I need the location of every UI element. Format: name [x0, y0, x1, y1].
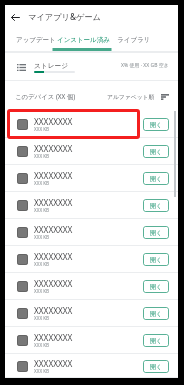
button[interactable]: アップデート [5, 28, 56, 51]
button[interactable]: 開く [143, 334, 169, 347]
staticText: 開く [150, 283, 163, 291]
staticText: ストレージ [34, 62, 69, 70]
staticText: X% 使用 · XX GB 空き [121, 62, 169, 69]
button[interactable]: 開く [143, 360, 169, 373]
staticText: 開く [150, 363, 163, 371]
button[interactable]: XXXXXXXX [5, 273, 178, 300]
button[interactable]: XXXXXXXX [5, 300, 178, 327]
button[interactable]: 開く [143, 172, 169, 185]
button[interactable]: 開く [143, 118, 169, 131]
staticText: XXX KB [34, 342, 50, 348]
staticText: 開く [150, 310, 163, 318]
button[interactable]: 開く [143, 307, 169, 320]
staticText: ライブラリ [117, 36, 151, 44]
staticText: XXX KB [34, 180, 50, 186]
staticText: XXXXXXXX [34, 278, 73, 289]
staticText: XXX KB [34, 126, 50, 132]
button[interactable]: XXXXXXXX [5, 327, 178, 354]
staticText: 開く [150, 121, 163, 129]
staticText: 開く [150, 256, 163, 264]
button[interactable]: ストレージ [5, 53, 178, 81]
staticText: XXX KB [34, 153, 50, 159]
staticText: XXX KB [34, 288, 50, 294]
staticText: XXX KB [34, 234, 50, 240]
button[interactable]: 開く [143, 253, 169, 266]
button[interactable]: アルファベット順 [107, 93, 169, 100]
button[interactable]: XXXXXXXX [5, 192, 178, 219]
staticText: XXXXXXXX [34, 170, 73, 181]
staticText: XXX KB [34, 261, 50, 267]
staticText: 開く [150, 337, 163, 345]
button[interactable]: 開く [143, 226, 169, 239]
button[interactable]: XXXXXXXX [5, 219, 178, 246]
staticText: XXXXXXXX [34, 358, 73, 369]
staticText: XXX KB [34, 207, 50, 213]
button[interactable]: XXXXXXXX [5, 111, 178, 138]
staticText: 開く [150, 175, 163, 183]
staticText: XXXXXXXX [34, 224, 73, 235]
button[interactable]: 開く [143, 199, 169, 212]
button[interactable]: XXXXXXXX [5, 138, 178, 165]
button[interactable]: XXXXXXXX [5, 246, 178, 273]
staticText: XXXXXXXX [34, 332, 73, 343]
button[interactable]: Back [5, 7, 25, 27]
staticText: 開く [150, 148, 163, 156]
button[interactable]: XXXXXXXX [5, 354, 178, 378]
staticText: XXX KB [34, 368, 50, 374]
button[interactable]: インストール済み [56, 28, 110, 51]
staticText: XXXXXXXX [34, 251, 73, 262]
staticText: XXX KB [34, 315, 50, 321]
staticText: XXXXXXXX [34, 197, 73, 208]
staticText: マイアプリ&ゲーム [28, 11, 101, 22]
staticText: XXXXXXXX [34, 116, 73, 127]
staticText: 開く [150, 229, 163, 237]
staticText: 開く [150, 202, 163, 210]
staticText: XXXXXXXX [34, 305, 73, 316]
staticText: アルファベット順 [107, 93, 155, 100]
button[interactable]: 開く [143, 145, 169, 158]
staticText: アップデート [16, 36, 56, 44]
staticText: インストール済み [57, 36, 110, 44]
button[interactable]: 開く [143, 280, 169, 293]
button[interactable]: ライブラリ [110, 28, 159, 51]
staticText: このデバイス (XX 個) [15, 92, 76, 101]
staticText: XXXXXXXX [34, 143, 73, 154]
button[interactable]: XXXXXXXX [5, 165, 178, 192]
